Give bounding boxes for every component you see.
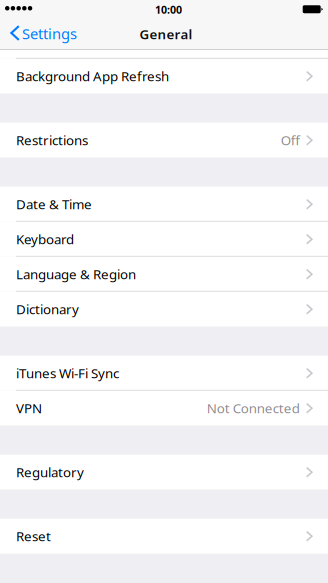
button[interactable]: iTunes Wi-Fi Sync <box>0 356 328 391</box>
staticText: iTunes Wi-Fi Sync <box>16 364 119 382</box>
staticText: Not Connected <box>207 399 300 417</box>
button[interactable]: Regulatory <box>0 455 328 490</box>
button[interactable]: Date & Time <box>0 187 328 222</box>
button[interactable]: Background App Refresh <box>0 59 328 94</box>
button[interactable]: Dictionary <box>0 292 328 327</box>
staticText: Reset <box>16 527 51 545</box>
button[interactable]: Reset <box>0 519 328 554</box>
button[interactable]: Restrictions <box>0 123 328 158</box>
button[interactable]: Language & Region <box>0 257 328 292</box>
staticText: Settings <box>22 24 77 43</box>
staticText: VPN <box>16 399 42 417</box>
staticText: Keyboard <box>16 230 74 248</box>
staticText: Restrictions <box>16 131 88 149</box>
staticText: Date & Time <box>16 195 92 213</box>
button[interactable]: Settings <box>0 20 85 49</box>
staticText: Dictionary <box>16 300 79 318</box>
staticText: 10:00 <box>155 2 182 17</box>
staticText: Background App Refresh <box>16 67 169 85</box>
button[interactable]: VPN <box>0 391 328 426</box>
button[interactable]: Keyboard <box>0 222 328 257</box>
staticText: General <box>139 25 192 43</box>
staticText: Language & Region <box>16 265 136 283</box>
staticText: Off <box>281 131 300 149</box>
staticText: Regulatory <box>16 463 84 481</box>
